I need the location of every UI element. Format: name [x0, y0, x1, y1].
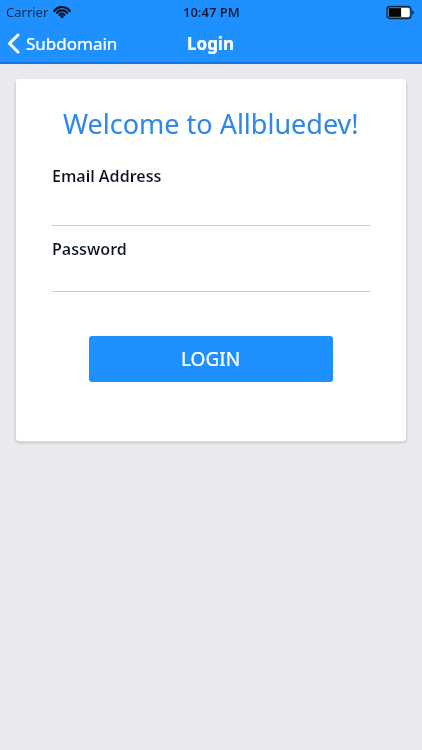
- staticText: Carrier: [6, 3, 49, 21]
- button[interactable]: Subdomain: [7, 32, 118, 55]
- staticText: LOGIN: [181, 346, 241, 372]
- staticText: Subdomain: [26, 32, 118, 55]
- staticText: Email Address: [52, 165, 162, 187]
- button[interactable]: LOGIN: [89, 336, 333, 382]
- staticText: 10:47 PM: [183, 3, 240, 21]
- staticText: Welcome to Allbluedev!: [63, 105, 359, 142]
- button[interactable]: [52, 187, 370, 226]
- staticText: Login: [187, 32, 235, 55]
- button[interactable]: [52, 260, 370, 292]
- staticText: Password: [52, 238, 127, 260]
